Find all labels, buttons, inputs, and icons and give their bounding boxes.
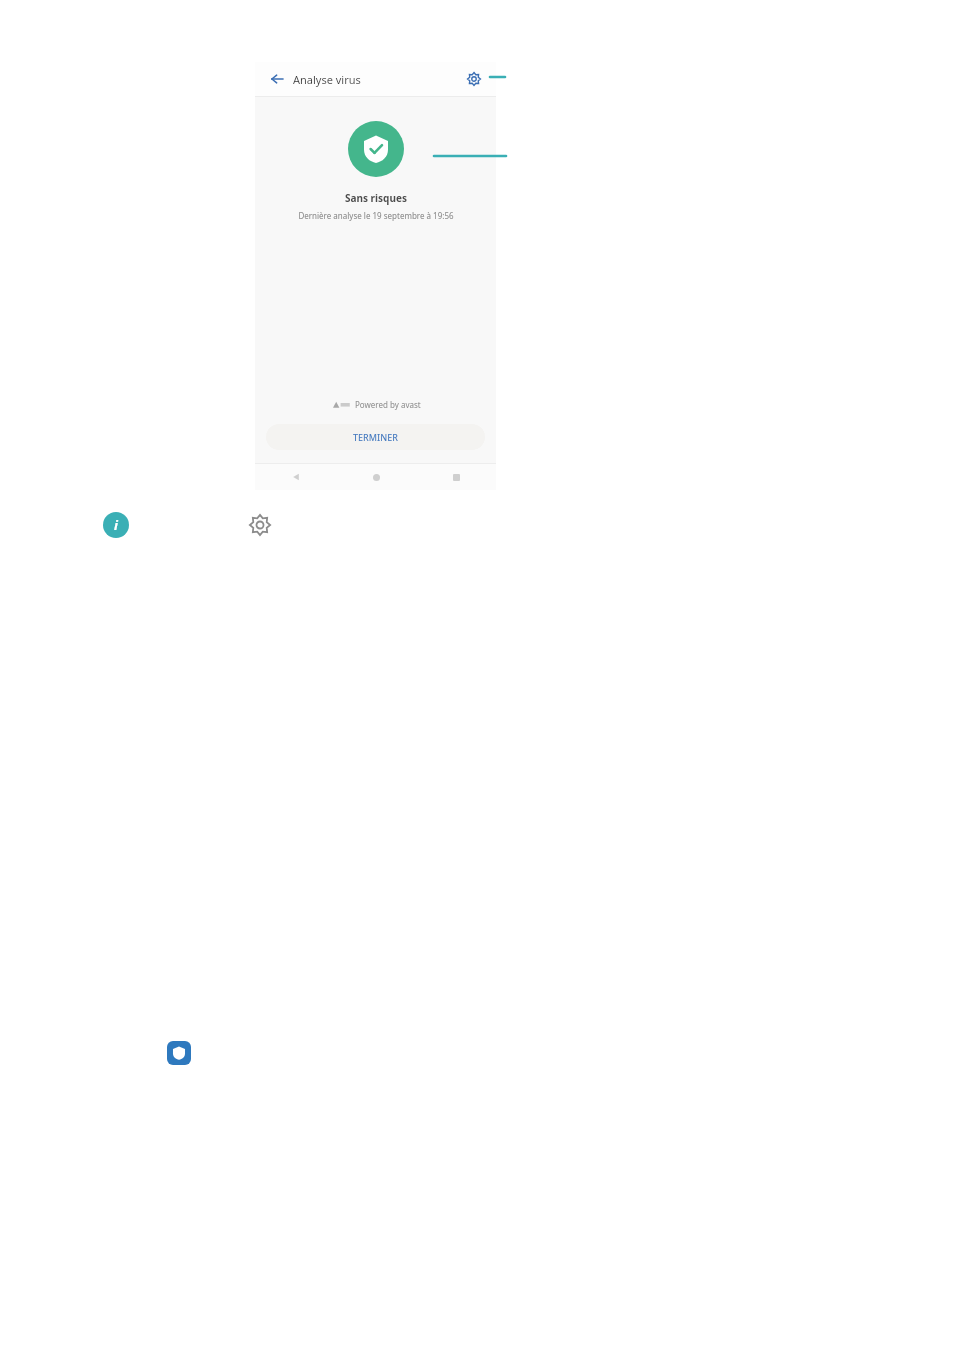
- button[interactable]: Back: [255, 473, 336, 481]
- button[interactable]: Settings: [462, 67, 486, 91]
- button[interactable]: TERMINER: [266, 424, 485, 450]
- staticText: TERMINER: [353, 431, 398, 443]
- button[interactable]: Recents: [416, 474, 496, 481]
- button[interactable]: Antivirus app: [167, 1041, 191, 1065]
- staticText: Sans risques: [345, 191, 407, 205]
- button[interactable]: Home: [336, 474, 416, 481]
- button[interactable]: Protection status: [348, 121, 404, 177]
- button[interactable]: Settings: [246, 511, 274, 539]
- staticText: Powered by avast: [355, 399, 421, 410]
- staticText: Analyse virus: [293, 72, 361, 87]
- button[interactable]: Information: [103, 512, 129, 538]
- staticText: i: [114, 516, 118, 534]
- staticText: Dernière analyse le 19 septembre à 19:56: [298, 210, 454, 221]
- button[interactable]: Back: [263, 65, 291, 93]
